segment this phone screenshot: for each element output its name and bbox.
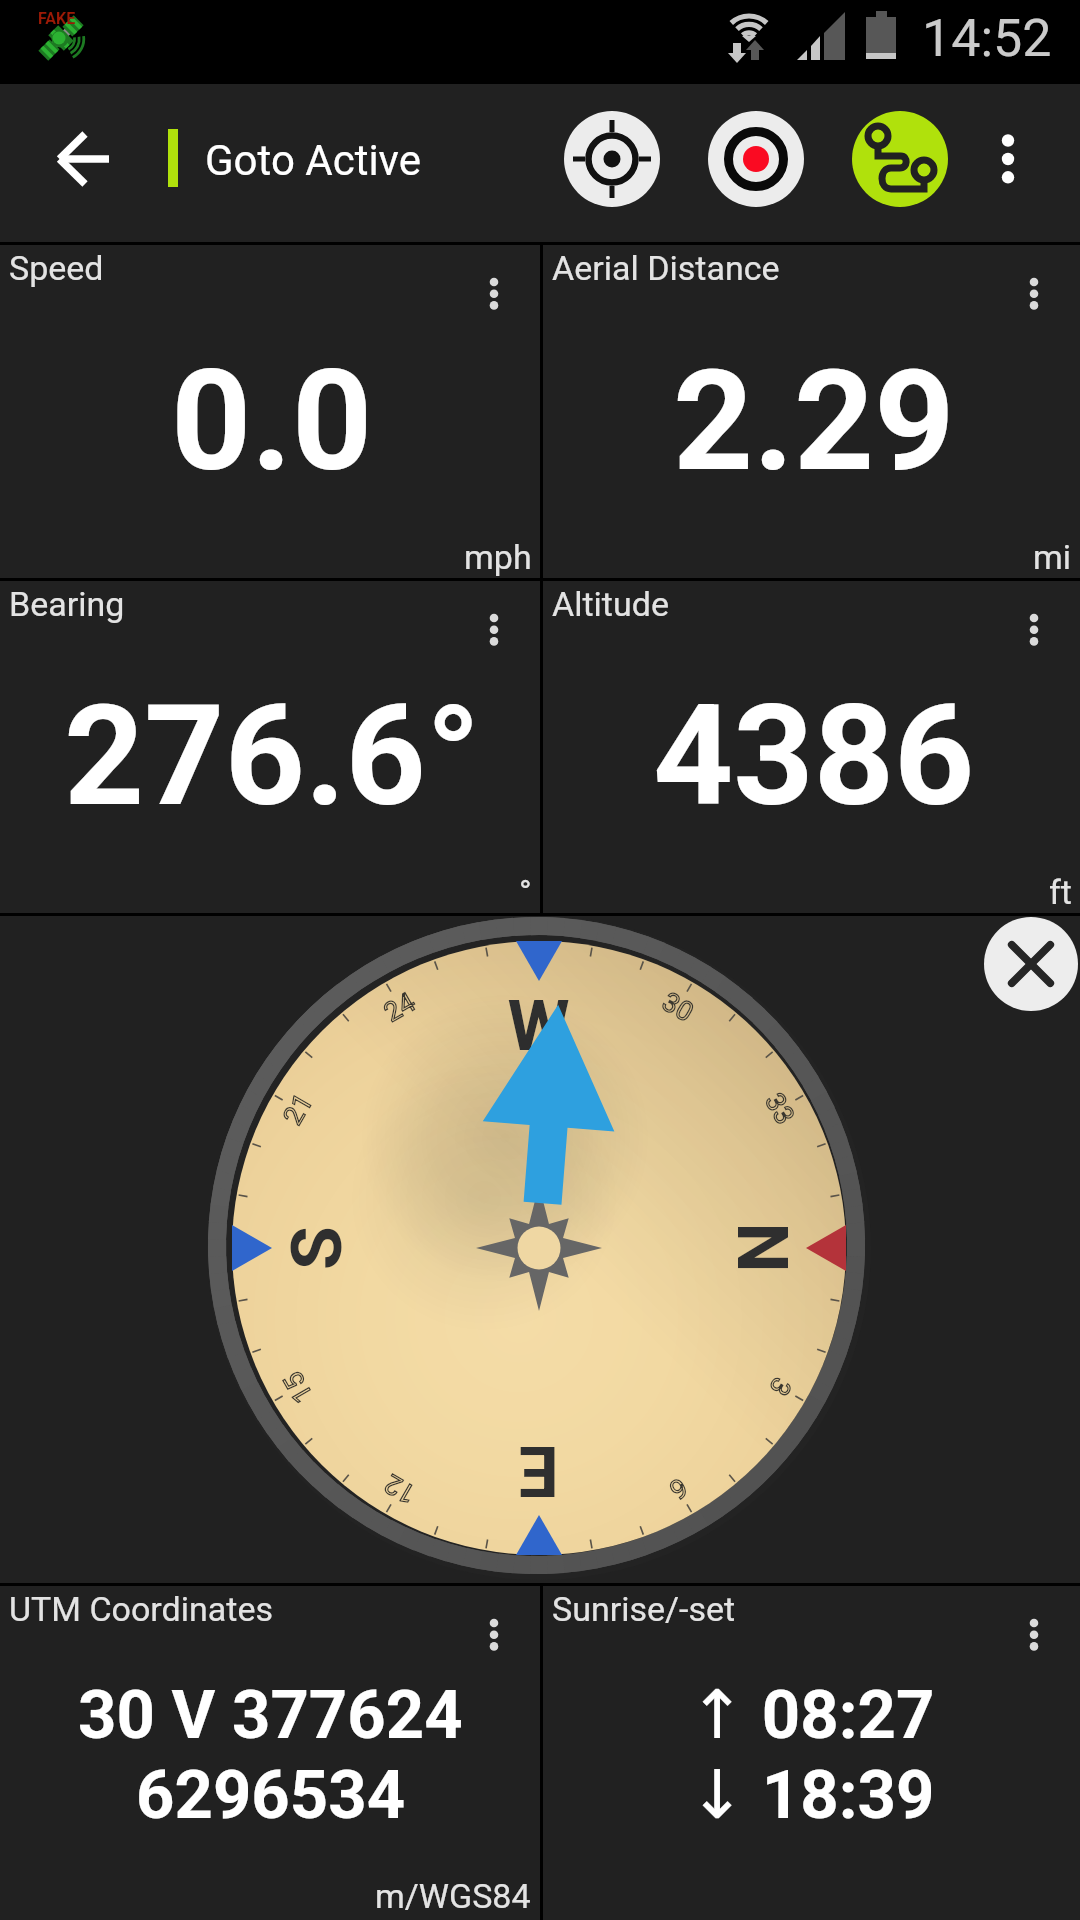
button[interactable]: Speed xyxy=(0,245,540,578)
button[interactable]: Bearing xyxy=(0,581,540,913)
staticText: ↓ 18:39 xyxy=(689,1756,935,1835)
button[interactable]: Card options xyxy=(472,273,516,323)
button[interactable]: Close compass xyxy=(984,917,1078,1011)
button[interactable]: Altitude xyxy=(543,581,1080,913)
button[interactable]: Card options xyxy=(1012,273,1056,323)
button[interactable]: Card options xyxy=(1012,1614,1056,1664)
staticText: m/WGS84 xyxy=(375,1876,531,1916)
button[interactable]: Card options xyxy=(472,1614,516,1664)
button[interactable]: Card options xyxy=(472,609,516,659)
staticText: Goto Active xyxy=(205,136,421,185)
staticText: 0.0 xyxy=(171,339,373,503)
staticText: ° xyxy=(519,872,532,912)
staticText: 14:52 xyxy=(922,8,1052,69)
button[interactable]: Aerial Distance xyxy=(543,245,1080,578)
staticText: 276.6° xyxy=(64,674,481,838)
button[interactable]: Sunrise/-set xyxy=(543,1586,1080,1920)
staticText: mph xyxy=(464,537,532,577)
staticText: FAKE xyxy=(38,9,76,28)
staticText: 2.29 xyxy=(673,339,955,503)
button[interactable]: More options xyxy=(975,105,1041,221)
staticText: Sunrise/-set xyxy=(552,1589,736,1629)
staticText: Bearing xyxy=(9,584,125,624)
button[interactable]: Navigate up xyxy=(36,114,134,212)
button[interactable]: Record track xyxy=(708,111,804,207)
button[interactable]: Card options xyxy=(1012,609,1056,659)
staticText: ↑ 08:27 xyxy=(689,1676,935,1755)
staticText: 4386 xyxy=(653,674,975,838)
staticText: UTM Coordinates xyxy=(9,1589,273,1629)
button[interactable]: Show route xyxy=(852,111,948,207)
button[interactable]: UTM Coordinates xyxy=(0,1586,540,1920)
staticText: Altitude xyxy=(552,584,669,624)
staticText: Speed xyxy=(9,248,104,288)
staticText: mi xyxy=(1033,537,1072,577)
staticText: 30 V 377624 xyxy=(78,1676,463,1755)
staticText: Aerial Distance xyxy=(552,248,780,288)
button[interactable]: Center on current position xyxy=(564,111,660,207)
staticText: ft xyxy=(1049,872,1072,912)
staticText: 6296534 xyxy=(136,1756,406,1835)
